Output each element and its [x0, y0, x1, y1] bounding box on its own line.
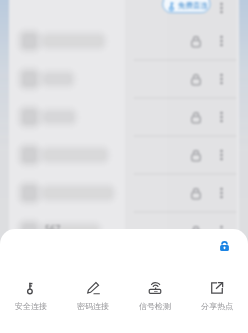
- button[interactable]: Secured network: [214, 236, 234, 256]
- staticText: 安全连接: [15, 301, 47, 311]
- staticText: 分享热点: [201, 301, 233, 311]
- staticText: 567: [45, 222, 61, 234]
- button[interactable]: 分享热点: [186, 262, 248, 311]
- button[interactable]: 安全连接: [0, 262, 62, 311]
- staticText: 密码连接: [77, 301, 109, 311]
- staticText: 免费直连: [178, 1, 208, 10]
- staticText: 信号检测: [139, 301, 171, 311]
- button[interactable]: 密码连接: [62, 262, 124, 311]
- button[interactable]: 信号检测: [124, 262, 186, 311]
